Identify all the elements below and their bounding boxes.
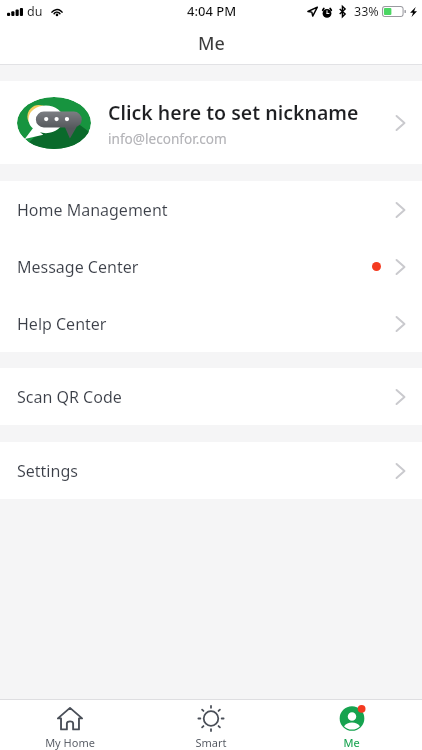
- button[interactable]: My Home tab: [0, 700, 140, 750]
- staticText: Scan QR Code: [17, 386, 395, 408]
- staticText: Me: [198, 31, 225, 56]
- staticText: My Home: [45, 735, 95, 750]
- button[interactable]: Help Center: [0, 295, 422, 352]
- staticText: info@leconfor.com: [108, 129, 227, 148]
- staticText: 4:04 PM: [187, 2, 237, 20]
- button[interactable]: Me tab: [281, 700, 422, 750]
- staticText: du: [27, 3, 43, 20]
- staticText: Home Management: [17, 199, 395, 221]
- staticText: Click here to set nickname: [108, 99, 359, 126]
- button[interactable]: Click here to set nickname: [0, 81, 422, 164]
- button[interactable]: Scan QR Code: [0, 368, 422, 425]
- staticText: Message Center: [17, 256, 372, 278]
- button[interactable]: Message Center: [0, 238, 422, 295]
- button[interactable]: Settings: [0, 442, 422, 499]
- button[interactable]: Smart tab: [140, 700, 281, 750]
- staticText: Help Center: [17, 313, 395, 335]
- staticText: Smart: [195, 735, 227, 750]
- staticText: 33%: [354, 3, 379, 20]
- staticText: Settings: [17, 460, 395, 482]
- button[interactable]: Home Management: [0, 181, 422, 238]
- staticText: Me: [343, 735, 360, 750]
